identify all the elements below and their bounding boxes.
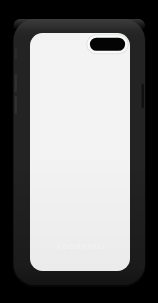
button[interactable]: LifeProof black phone case product photo — [0, 0, 158, 303]
